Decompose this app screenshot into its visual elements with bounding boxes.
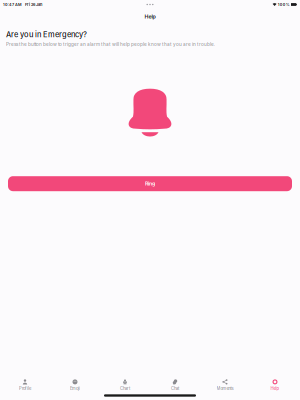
staticText: Help [270,386,279,391]
button[interactable]: Moments [200,376,250,391]
button[interactable]: Emoji [50,376,100,391]
staticText: Chart [120,386,130,391]
staticText: Fri 26 Jan [25,2,42,7]
staticText: Are you in Emergency? [6,30,87,39]
staticText: Press the button below to trigger an ala… [6,41,215,47]
staticText: Chat [171,386,179,391]
staticText: Help [144,13,155,20]
staticText: Profile [19,386,31,391]
button[interactable]: Chat [150,376,200,391]
button[interactable]: Ring [8,176,292,191]
button[interactable]: Profile [0,376,50,391]
staticText: Moments [216,386,233,391]
staticText: 100% [278,2,290,7]
staticText: 10:47 AM [3,2,22,7]
button[interactable]: Chart [100,376,150,391]
button[interactable]: Help [250,376,300,391]
staticText: Emoji [70,386,80,391]
staticText: Ring [145,180,155,187]
